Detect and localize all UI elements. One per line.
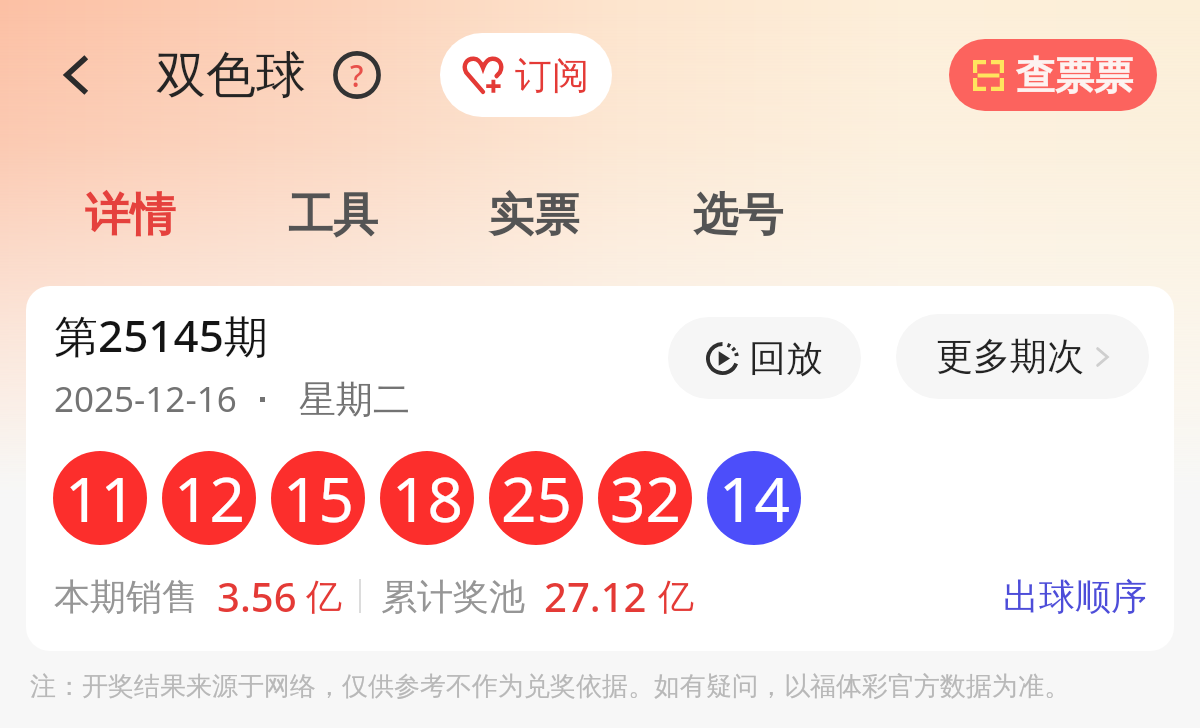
- staticText: 12: [174, 456, 245, 540]
- button[interactable]: 回放: [668, 317, 861, 399]
- staticText: 出球顺序: [1003, 574, 1147, 619]
- staticText: 工具: [288, 187, 378, 244]
- staticText: 实票: [489, 187, 579, 244]
- staticText: ?: [350, 55, 364, 96]
- staticText: 累计奖池: [381, 574, 525, 619]
- staticText: 星期二: [299, 376, 410, 423]
- staticText: 本期销售: [54, 574, 198, 619]
- button[interactable]: Back: [52, 50, 102, 100]
- staticText: 查票票: [1016, 51, 1133, 100]
- staticText: 11: [65, 456, 136, 540]
- button[interactable]: 查票票: [949, 39, 1157, 111]
- staticText: 注：开奖结果来源于网络，仅供参考不作为兑奖依据。如有疑问，以福体彩官方数据为准。: [30, 670, 1070, 703]
- staticText: 详情: [85, 187, 175, 244]
- staticText: 3.56: [217, 569, 297, 623]
- staticText: 32: [610, 456, 681, 540]
- staticText: 27.12: [544, 569, 647, 623]
- staticText: 第25145期: [54, 305, 268, 365]
- staticText: 双色球: [156, 44, 306, 107]
- staticText: 回放: [749, 335, 823, 382]
- button[interactable]: 更多期次: [896, 314, 1149, 399]
- staticText: 18: [392, 456, 463, 540]
- button[interactable]: 订阅: [440, 33, 612, 117]
- staticText: 15: [283, 456, 354, 540]
- staticText: 亿: [658, 574, 694, 619]
- staticText: 订阅: [515, 52, 589, 99]
- button[interactable]: 出球顺序: [1003, 574, 1147, 619]
- button[interactable]: Help: [332, 50, 382, 100]
- button[interactable]: 选号: [691, 177, 785, 254]
- staticText: 2025-12-16: [54, 375, 237, 423]
- staticText: 25: [501, 456, 572, 540]
- staticText: 更多期次: [936, 333, 1084, 380]
- button[interactable]: 详情: [83, 177, 177, 254]
- button[interactable]: 工具: [286, 177, 380, 254]
- staticText: 亿: [306, 574, 342, 619]
- staticText: 14: [719, 456, 790, 540]
- staticText: 选号: [693, 187, 783, 244]
- button[interactable]: 实票: [487, 177, 581, 254]
